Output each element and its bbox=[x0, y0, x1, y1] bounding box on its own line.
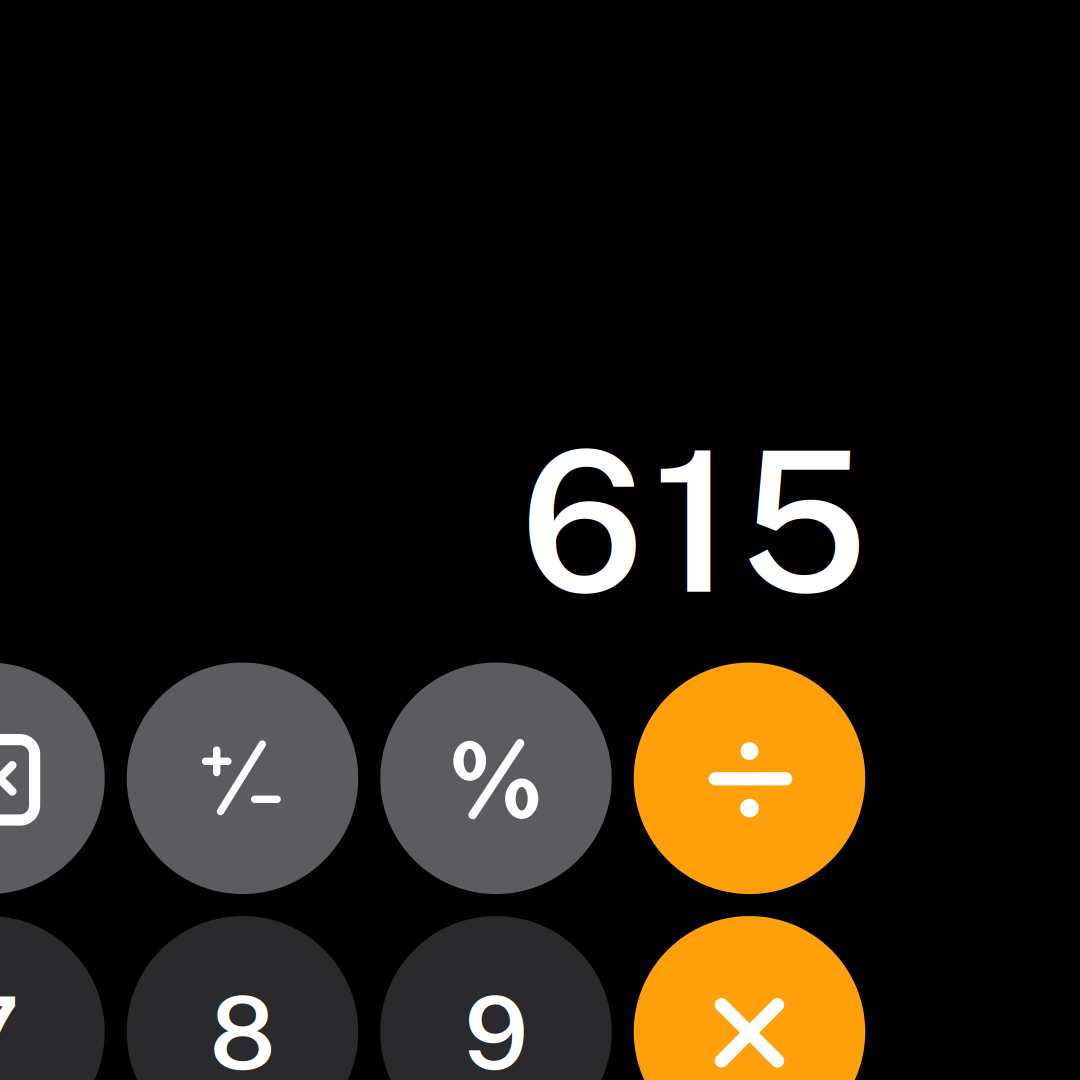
staticText: 8 bbox=[209, 974, 275, 1080]
staticText: 9 bbox=[464, 974, 528, 1080]
button[interactable]: Toggle sign bbox=[127, 662, 358, 894]
staticText: 615 bbox=[520, 406, 868, 636]
button[interactable]: 7 bbox=[0, 916, 105, 1080]
button[interactable]: Percent bbox=[380, 662, 612, 894]
button[interactable]: Divide bbox=[634, 662, 865, 894]
button[interactable]: 8 bbox=[127, 916, 358, 1080]
button[interactable]: Delete bbox=[0, 662, 105, 894]
staticText: 7 bbox=[0, 974, 20, 1080]
button[interactable]: Multiply bbox=[634, 916, 865, 1080]
button[interactable]: 9 bbox=[380, 916, 612, 1080]
